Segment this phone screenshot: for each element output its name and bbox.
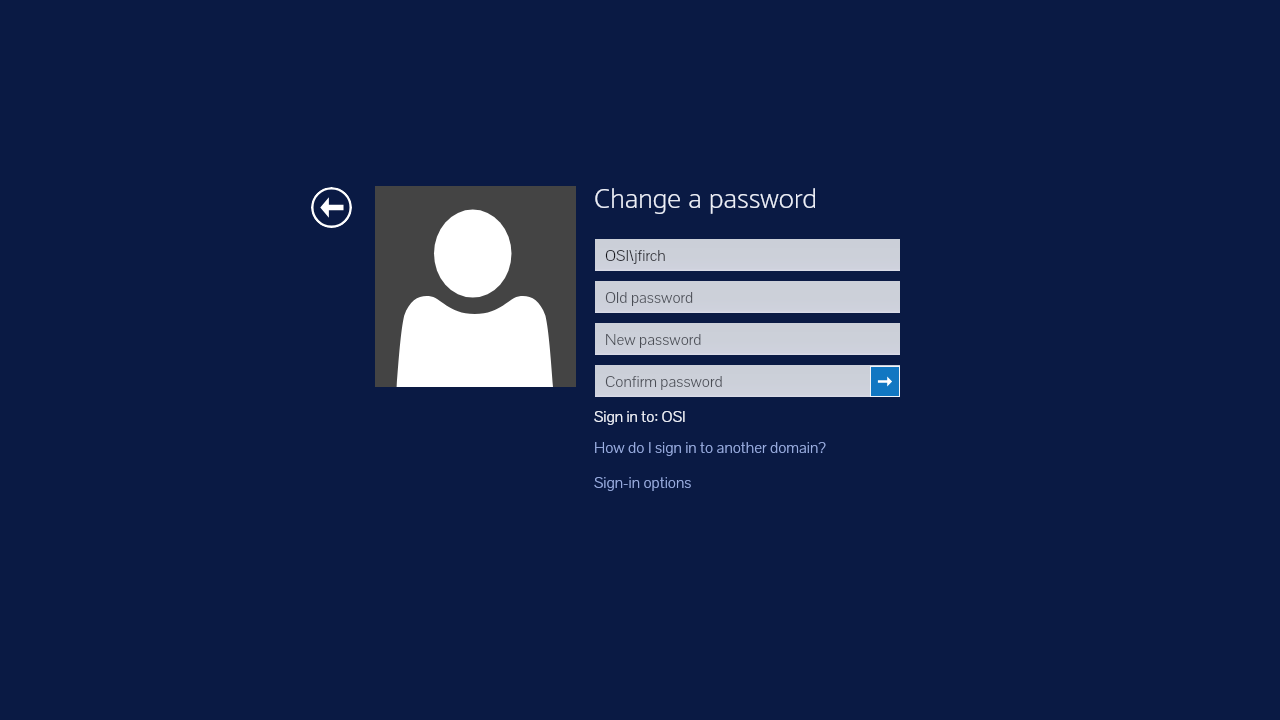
button[interactable]: Sign-in options — [594, 472, 692, 493]
staticText: OSI\jfirch — [605, 245, 666, 266]
button[interactable]: How do I sign in to another domain? — [594, 437, 826, 458]
staticText: Sign-in options — [594, 472, 692, 493]
button[interactable]: OSI\jfirch — [595, 239, 900, 271]
staticText: Old password — [605, 287, 694, 308]
button[interactable]: Back — [311, 187, 352, 228]
staticText: Confirm password — [605, 371, 723, 392]
staticText: How do I sign in to another domain? — [594, 437, 826, 458]
button[interactable]: Submit — [871, 367, 899, 396]
staticText: New password — [605, 329, 702, 350]
button[interactable]: Confirm password — [595, 365, 900, 397]
staticText: Change a password — [594, 176, 818, 223]
button[interactable]: Old password — [595, 281, 900, 313]
staticText: Sign in to: OSI — [594, 406, 686, 427]
button[interactable]: New password — [595, 323, 900, 355]
